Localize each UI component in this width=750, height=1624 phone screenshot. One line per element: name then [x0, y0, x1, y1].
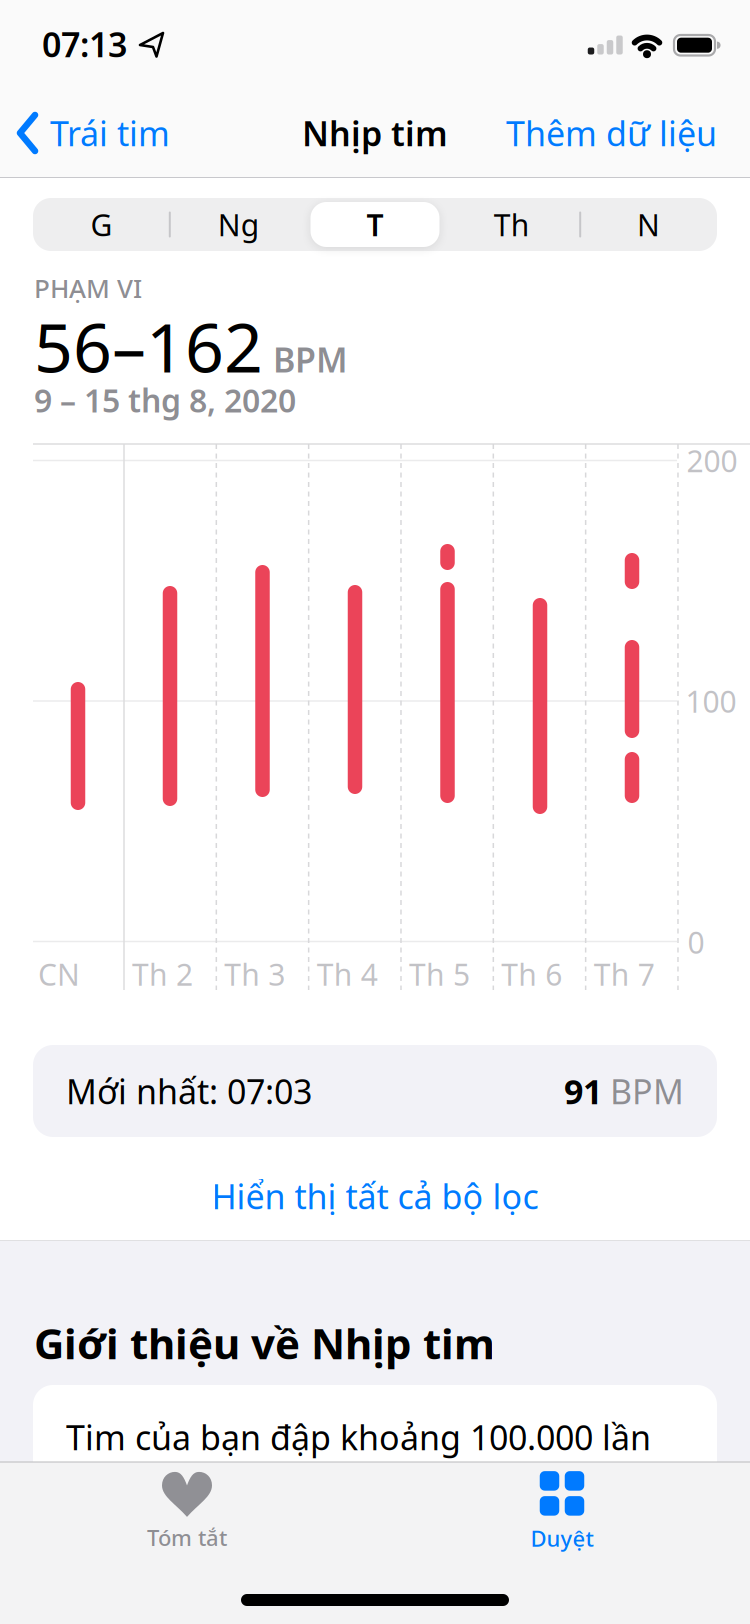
button[interactable]: Hiển thị tất cả bộ lọc: [211, 1173, 538, 1219]
staticText: Duyệt: [530, 1524, 593, 1553]
button[interactable]: Duyệt: [472, 1464, 652, 1560]
staticText: N: [637, 205, 660, 244]
staticText: Ng: [218, 205, 259, 244]
staticText: 0: [687, 922, 704, 962]
staticText: BPM: [273, 337, 348, 382]
button[interactable]: Mới nhất: 07:03: [33, 1045, 717, 1137]
button[interactable]: G: [33, 198, 170, 251]
staticText: Th 7: [594, 954, 655, 994]
button[interactable]: T: [307, 198, 443, 251]
button[interactable]: Thêm dữ liệu: [506, 110, 717, 156]
button[interactable]: Tóm tắt: [97, 1464, 277, 1560]
staticText: 56–162: [34, 301, 263, 391]
staticText: 07:13: [42, 21, 127, 67]
staticText: 100: [685, 681, 736, 721]
staticText: Nhịp tim: [302, 110, 448, 156]
staticText: Th 5: [409, 954, 470, 994]
staticText: Th 3: [224, 954, 285, 994]
staticText: 91: [564, 1068, 602, 1114]
button[interactable]: Trái tim: [18, 110, 170, 156]
staticText: PHẠM VI: [34, 271, 142, 305]
staticText: T: [366, 205, 383, 244]
staticText: Th 4: [317, 954, 378, 994]
staticText: BPM: [610, 1068, 684, 1114]
staticText: Tim của bạn đập khoảng 100.000 lần: [66, 1414, 651, 1460]
staticText: Trái tim: [50, 110, 170, 156]
staticText: Th: [494, 205, 530, 244]
staticText: Thêm dữ liệu: [506, 110, 717, 156]
staticText: Giới thiệu về Nhịp tim: [34, 1315, 495, 1371]
staticText: Tóm tắt: [147, 1523, 227, 1552]
staticText: Th 2: [132, 954, 193, 994]
staticText: G: [90, 205, 112, 244]
staticText: CN: [38, 954, 80, 994]
staticText: 200: [686, 441, 737, 480]
staticText: Hiển thị tất cả bộ lọc: [211, 1173, 538, 1219]
staticText: Mới nhất: 07:03: [66, 1068, 312, 1114]
button[interactable]: Ng: [170, 198, 307, 251]
staticText: Th 6: [501, 954, 562, 994]
staticText: 9 – 15 thg 8, 2020: [34, 379, 296, 421]
button[interactable]: N: [580, 198, 717, 251]
button[interactable]: Th: [443, 198, 580, 251]
